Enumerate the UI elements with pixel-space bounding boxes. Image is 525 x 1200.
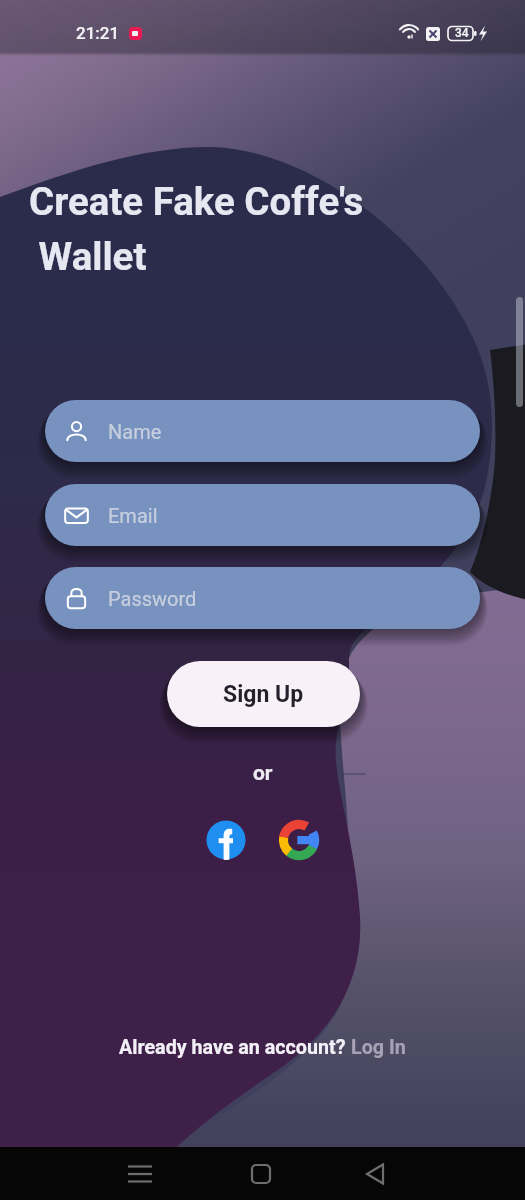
button[interactable]: Home: [235, 1147, 287, 1200]
staticText: 21:21: [76, 23, 120, 43]
staticText: Sign Up: [223, 681, 304, 708]
button[interactable]: Back: [350, 1147, 402, 1200]
button[interactable]: Log In: [351, 1036, 406, 1059]
button[interactable]: Email: [45, 484, 480, 546]
button[interactable]: Sign up with Facebook: [206, 820, 246, 860]
button[interactable]: Recent apps: [114, 1147, 166, 1200]
staticText: 34: [455, 26, 469, 40]
staticText: Email: [108, 504, 158, 527]
button[interactable]: Sign up with Google: [278, 819, 320, 861]
staticText: Password: [108, 587, 197, 610]
staticText: Create Fake Coffe's Wallet: [29, 179, 364, 279]
staticText: Name: [108, 420, 162, 443]
button[interactable]: Sign Up: [167, 661, 360, 727]
staticText: Already have an account?: [119, 1036, 351, 1059]
button[interactable]: Password: [45, 567, 480, 629]
button[interactable]: Name: [45, 400, 480, 462]
staticText: or: [253, 761, 273, 786]
